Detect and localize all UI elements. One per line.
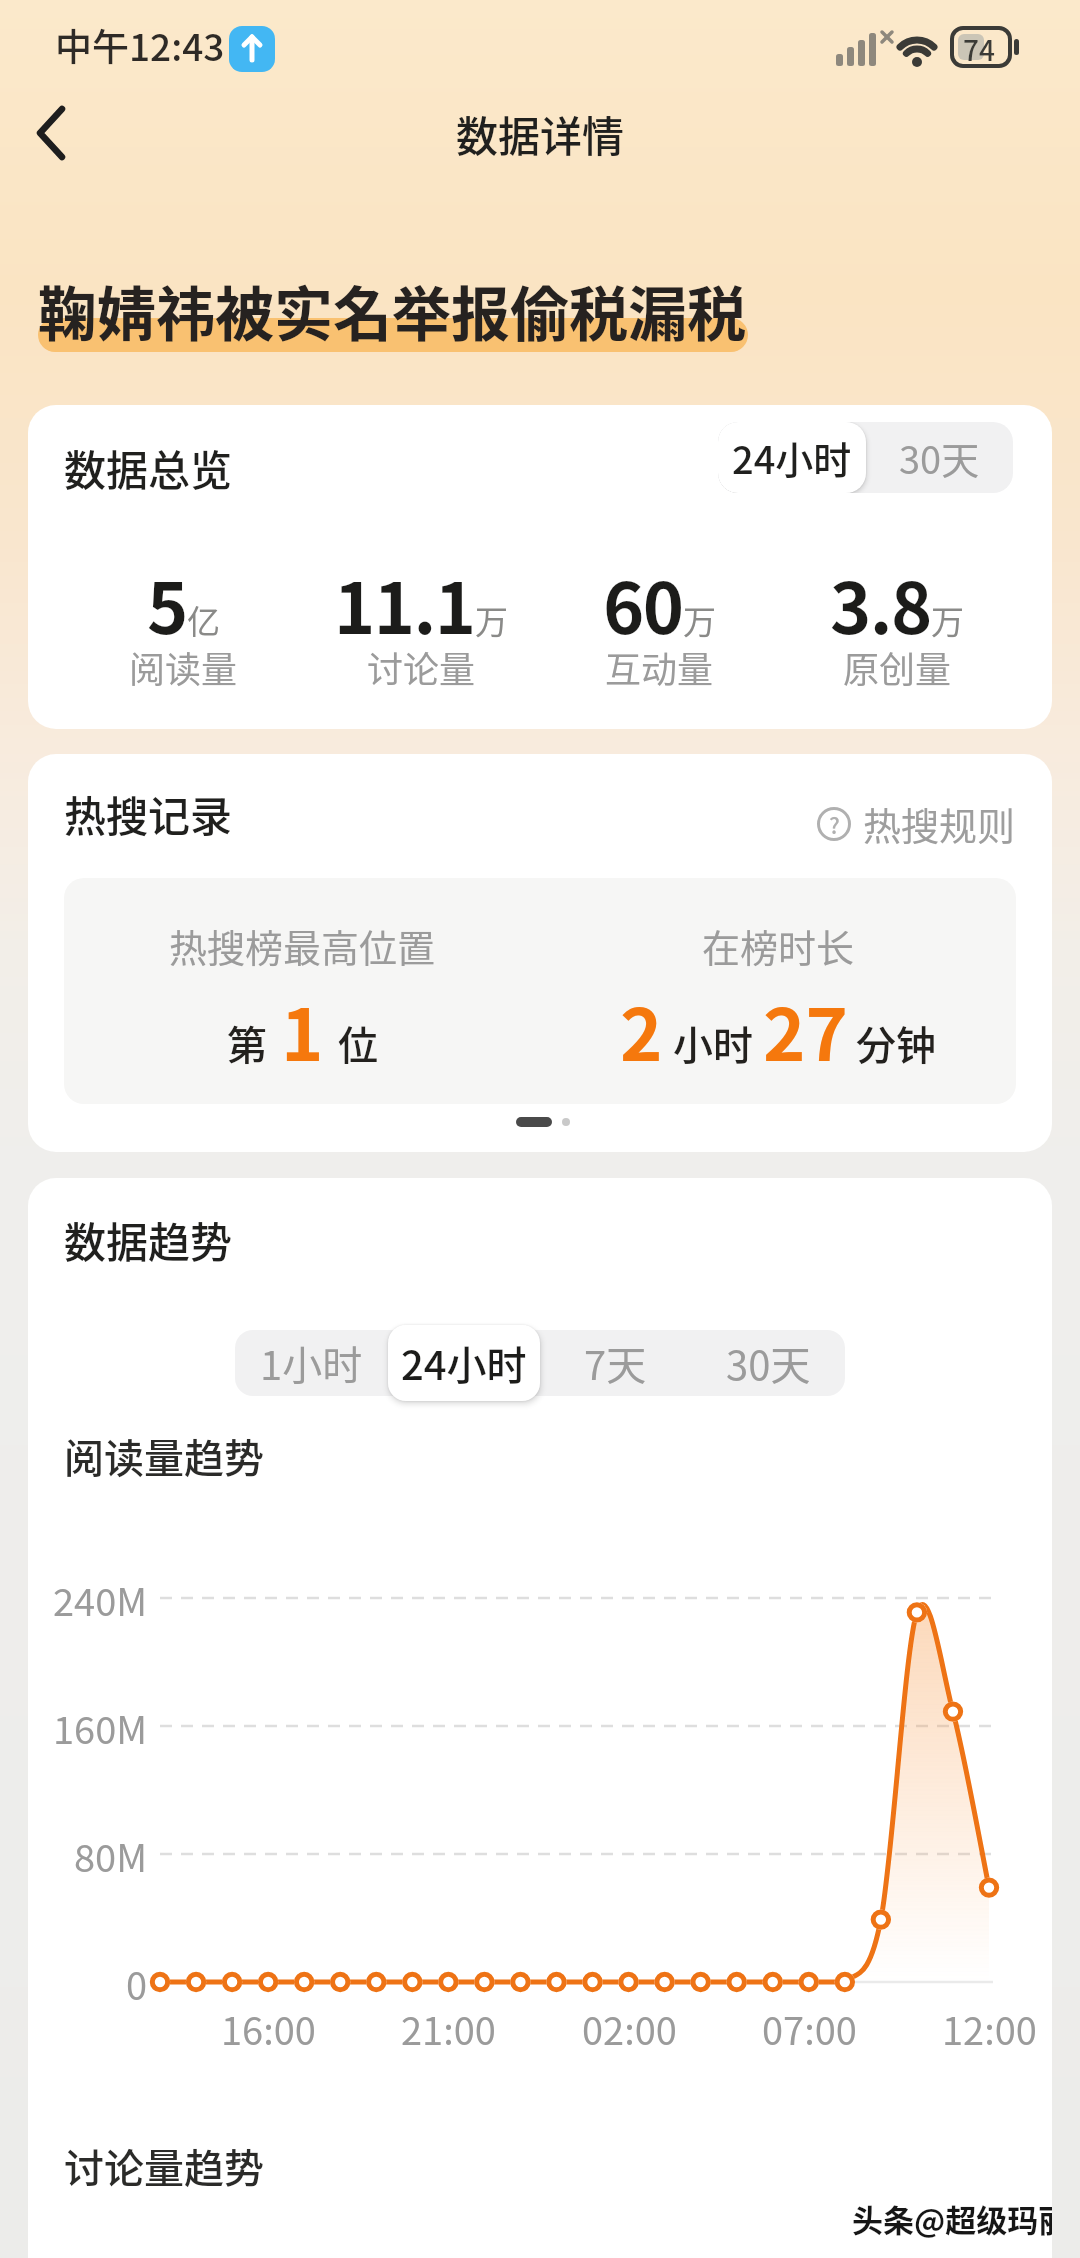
button[interactable]: 1小时: [235, 1330, 387, 1396]
staticText: 3.8: [830, 553, 931, 654]
staticText: 讨论量: [367, 641, 476, 693]
staticText: 74: [963, 29, 995, 70]
staticText: 1小时: [260, 1334, 363, 1392]
staticText: 11.1: [334, 553, 475, 654]
button[interactable]: 30天: [692, 1330, 845, 1396]
button[interactable]: 24小时: [388, 1325, 540, 1401]
staticText: 160M: [53, 1700, 148, 1755]
staticText: 热搜榜最高位置: [169, 918, 436, 973]
staticText: 0: [126, 1956, 148, 2011]
staticText: 27: [763, 977, 848, 1081]
staticText: 在榜时长: [702, 918, 855, 973]
staticText: 80M: [74, 1828, 148, 1883]
staticText: 240M: [53, 1572, 148, 1627]
staticText: 数据详情: [456, 103, 625, 164]
staticText: 30天: [726, 1334, 811, 1392]
button[interactable]: ?: [817, 796, 1016, 851]
staticText: 阅读量: [129, 641, 238, 693]
staticText: 60: [603, 553, 683, 654]
staticText: 21:00: [401, 2001, 496, 2056]
staticText: 24小时: [732, 430, 852, 485]
staticText: 5: [147, 553, 187, 654]
staticText: 热搜规则: [863, 796, 1016, 851]
staticText: 第: [227, 1014, 267, 1072]
staticText: 数据总览: [64, 437, 233, 498]
staticText: 原创量: [843, 641, 952, 693]
button[interactable]: 30天: [866, 422, 1013, 493]
staticText: 互动量: [605, 641, 714, 693]
staticText: 1: [281, 977, 324, 1081]
staticText: 小时: [673, 1014, 753, 1072]
staticText: ?: [829, 808, 840, 840]
staticText: 阅读量趋势: [64, 1427, 264, 1485]
staticText: 讨论量趋势: [64, 2137, 264, 2195]
staticText: 亿: [187, 596, 220, 644]
button[interactable]: [20, 105, 80, 165]
staticText: 12:00: [942, 2001, 1037, 2056]
staticText: 万: [931, 596, 964, 644]
staticText: 16:00: [221, 2001, 316, 2056]
staticText: 中午12:43: [55, 18, 225, 72]
staticText: 热搜记录: [64, 783, 233, 844]
staticText: 24小时: [401, 1334, 527, 1392]
staticText: 头条@超级玛丽: [852, 2196, 1052, 2241]
staticText: 万: [475, 596, 508, 644]
button[interactable]: 24小时: [718, 422, 866, 493]
staticText: 位: [338, 1014, 378, 1072]
staticText: 分钟: [856, 1014, 936, 1072]
button[interactable]: 7天: [539, 1330, 692, 1396]
staticText: 7天: [584, 1334, 647, 1392]
staticText: 鞠婧祎被实名举报偷税漏税: [38, 268, 747, 353]
staticText: 30天: [899, 430, 980, 485]
staticText: 数据趋势: [64, 1209, 233, 1270]
staticText: 07:00: [762, 2001, 857, 2056]
staticText: 2: [620, 977, 663, 1081]
staticText: 02:00: [582, 2001, 677, 2056]
staticText: 万: [683, 596, 716, 644]
